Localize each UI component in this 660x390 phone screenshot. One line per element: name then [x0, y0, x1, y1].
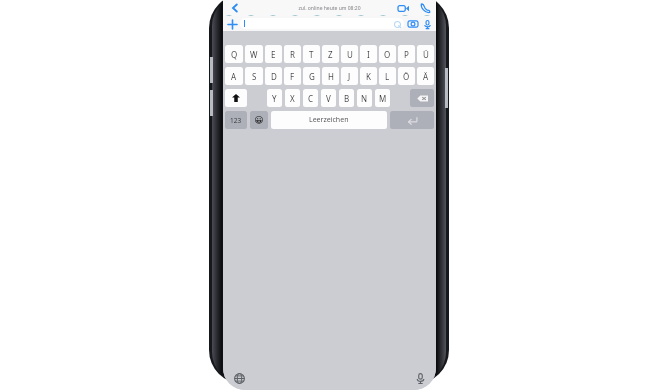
button[interactable]: Call — [418, 1, 432, 15]
staticText: E — [271, 49, 276, 60]
button[interactable]: N — [357, 89, 372, 107]
button[interactable]: Ö — [398, 67, 415, 85]
staticText: Y — [272, 93, 277, 104]
staticText: I — [367, 49, 370, 60]
staticText: K — [366, 71, 371, 82]
staticText: S — [252, 71, 257, 82]
staticText: Ü — [423, 49, 429, 60]
button[interactable]: G — [303, 67, 320, 85]
button[interactable]: Leerzeichen — [271, 111, 387, 129]
button[interactable]: K — [360, 67, 377, 85]
button[interactable]: Dictation — [413, 371, 427, 385]
staticText: L — [385, 71, 390, 82]
staticText: O — [384, 49, 391, 60]
button[interactable]: M — [375, 89, 390, 107]
button[interactable]: Change keyboard — [232, 371, 246, 385]
button[interactable]: Ü — [417, 45, 434, 63]
button[interactable]: T — [303, 45, 320, 63]
button[interactable]: I — [360, 45, 377, 63]
staticText: 123 — [230, 116, 242, 125]
staticText: Ä — [423, 71, 429, 82]
button[interactable]: F — [284, 67, 301, 85]
button[interactable]: D — [265, 67, 282, 85]
button[interactable]: Emoji — [250, 111, 268, 129]
staticText: zul. online heute um 08:20 — [298, 5, 361, 12]
button[interactable]: Shift — [225, 89, 247, 107]
staticText: W — [250, 49, 258, 60]
button[interactable]: B — [339, 89, 354, 107]
button[interactable]: P — [398, 45, 415, 63]
staticText: Q — [231, 49, 238, 60]
staticText: G — [309, 71, 315, 82]
staticText: R — [290, 49, 295, 60]
staticText: D — [271, 71, 277, 82]
button[interactable]: Stickers — [240, 18, 404, 29]
button[interactable]: Back — [227, 0, 243, 16]
button[interactable]: Voice message — [421, 18, 433, 30]
staticText: P — [404, 49, 409, 60]
button[interactable]: O — [379, 45, 396, 63]
staticText: U — [347, 49, 353, 60]
staticText: B — [344, 93, 350, 104]
button[interactable]: Ä — [417, 67, 434, 85]
button[interactable]: V — [321, 89, 336, 107]
button[interactable]: C — [303, 89, 318, 107]
staticText: 😀 — [254, 115, 264, 125]
button[interactable]: Attach — [226, 18, 238, 30]
button[interactable]: Y — [267, 89, 282, 107]
button[interactable]: E — [265, 45, 282, 63]
button[interactable]: Backspace — [410, 89, 434, 107]
staticText: N — [361, 93, 368, 104]
staticText: T — [309, 49, 314, 60]
staticText: Leerzeichen — [309, 115, 349, 125]
staticText: H — [328, 71, 334, 82]
button[interactable]: R — [284, 45, 301, 63]
button[interactable]: Video call — [396, 1, 410, 15]
button[interactable]: S — [245, 67, 263, 85]
staticText: V — [326, 93, 331, 104]
button[interactable]: Stickers — [393, 20, 401, 28]
staticText: F — [290, 71, 295, 82]
staticText: J — [348, 71, 351, 82]
button[interactable]: Camera — [407, 18, 419, 30]
button[interactable]: Q — [225, 45, 243, 63]
staticText: Z — [328, 49, 333, 60]
staticText: A — [231, 71, 237, 82]
staticText: M — [379, 93, 387, 104]
button[interactable]: J — [341, 67, 358, 85]
staticText: X — [290, 93, 295, 104]
button[interactable]: A — [225, 67, 243, 85]
button[interactable]: X — [285, 89, 300, 107]
button[interactable]: H — [322, 67, 339, 85]
button[interactable]: Z — [322, 45, 339, 63]
button[interactable]: 123 — [225, 111, 247, 129]
staticText: Ö — [403, 71, 410, 82]
button[interactable]: W — [245, 45, 263, 63]
button[interactable]: U — [341, 45, 358, 63]
staticText: C — [308, 93, 314, 104]
button[interactable]: L — [379, 67, 396, 85]
button[interactable]: Return — [390, 111, 434, 129]
